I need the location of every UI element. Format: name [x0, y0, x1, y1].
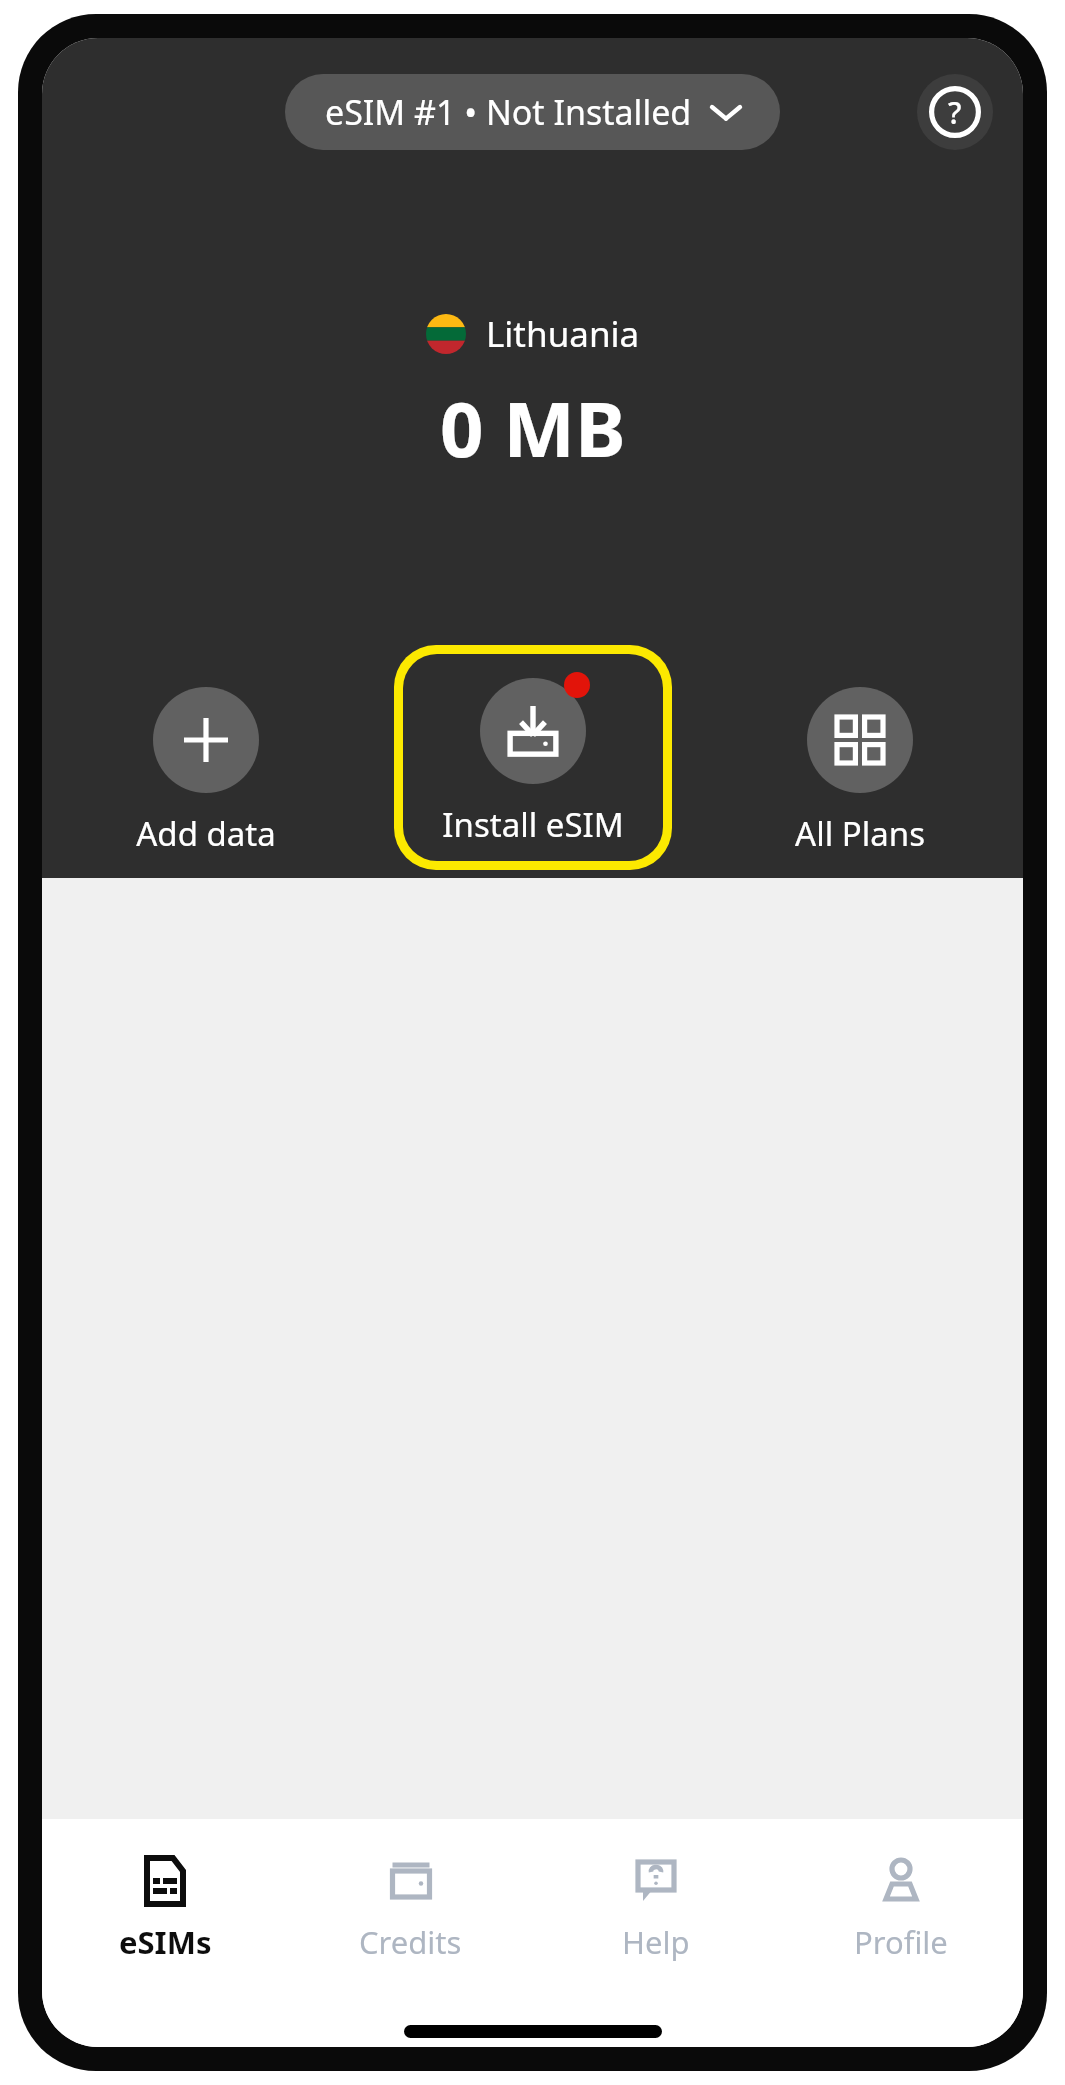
button[interactable]: eSIM #1 • Not Installed [285, 74, 780, 150]
staticText: ? [948, 92, 962, 133]
staticText: eSIMs [119, 1921, 212, 1963]
staticText: Install eSIM [442, 802, 624, 847]
button[interactable]: Install eSIM [403, 654, 663, 861]
button[interactable]: All Plans [795, 663, 925, 870]
staticText: eSIM #1 • Not Installed [325, 89, 692, 135]
staticText: Help [622, 1921, 690, 1963]
button[interactable]: eSIMs [42, 1845, 288, 1971]
staticText: Credits [359, 1921, 462, 1963]
button[interactable]: Help [917, 74, 993, 150]
button[interactable]: Help [533, 1845, 778, 1971]
button[interactable]: Add data [136, 663, 276, 870]
staticText: All Plans [795, 811, 925, 856]
staticText: Profile [854, 1921, 948, 1963]
staticText: Add data [136, 811, 276, 856]
button[interactable]: Profile [778, 1845, 1023, 1971]
staticText: 0 MB [440, 376, 626, 480]
staticText: Lithuania [486, 310, 640, 358]
button[interactable]: Credits [288, 1845, 533, 1971]
